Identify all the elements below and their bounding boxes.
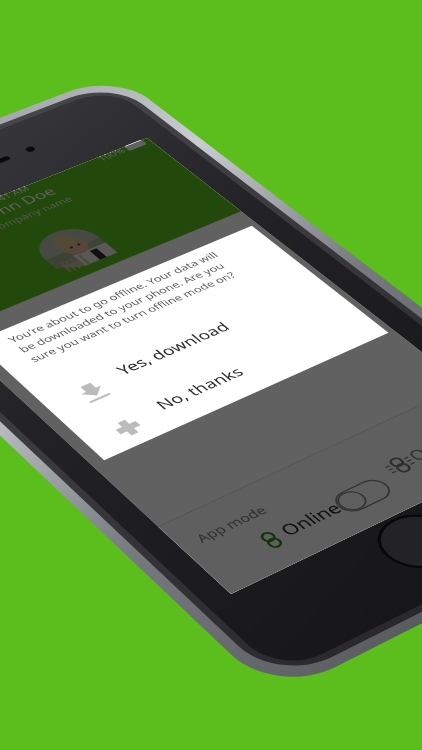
button[interactable] (0, 0, 422, 750)
